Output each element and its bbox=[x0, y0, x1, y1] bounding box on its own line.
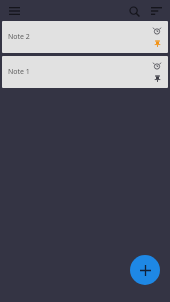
button[interactable]: Note 2 bbox=[2, 21, 168, 53]
button[interactable]: Sort bbox=[146, 1, 166, 21]
button[interactable]: Menu bbox=[5, 2, 23, 20]
button[interactable]: Note 1 bbox=[2, 56, 168, 88]
staticText: Note 1 bbox=[8, 67, 30, 77]
staticText: Note 2 bbox=[8, 32, 30, 42]
button[interactable]: Add note bbox=[130, 255, 160, 285]
button[interactable]: Search bbox=[124, 1, 144, 21]
